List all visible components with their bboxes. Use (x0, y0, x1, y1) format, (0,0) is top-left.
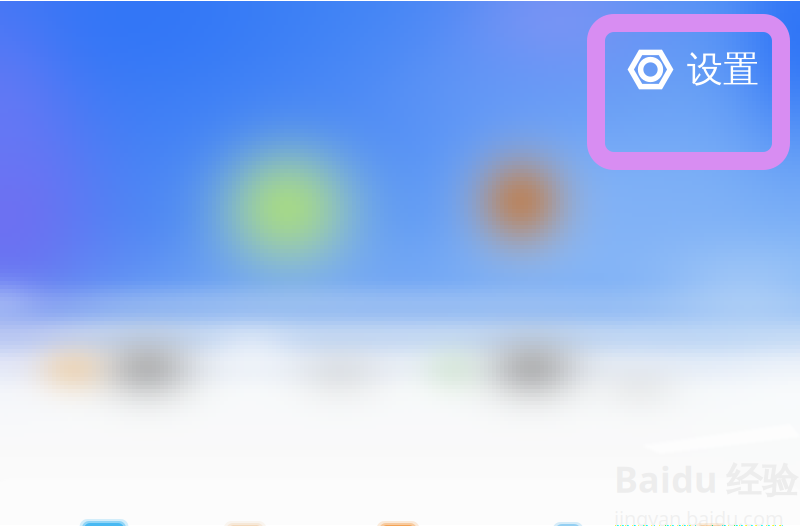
button[interactable]: 设置 (587, 14, 790, 170)
staticText: 设置 (687, 47, 759, 92)
staticText: Baidu 经验 (614, 455, 798, 503)
staticText: jingyan.baidu.com (614, 505, 784, 526)
